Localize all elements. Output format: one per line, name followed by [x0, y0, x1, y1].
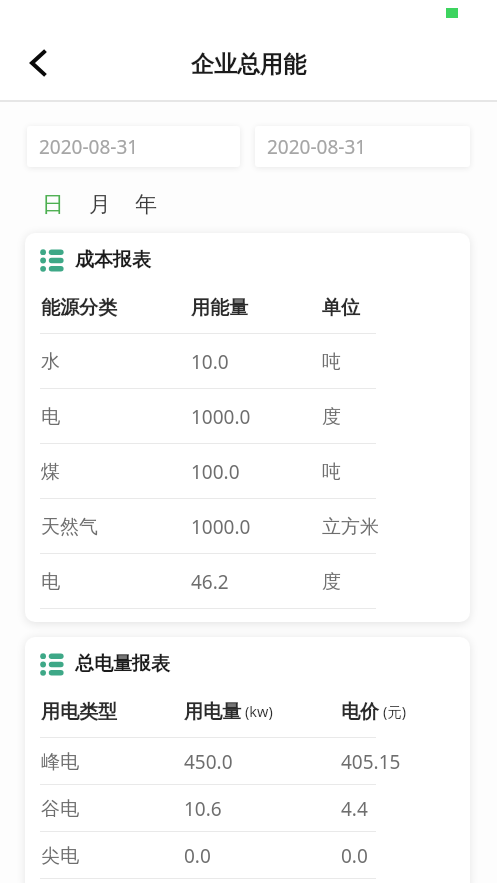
- staticText: 吨: [322, 350, 341, 374]
- staticText: 1000.0: [191, 514, 251, 540]
- staticText: 总电量报表: [75, 652, 170, 676]
- staticText: 吨: [322, 460, 341, 484]
- staticText: 1000.0: [191, 404, 251, 430]
- staticText: 立方米: [322, 515, 379, 539]
- staticText: 用电量: [184, 700, 241, 724]
- staticText: 电价: [341, 700, 379, 724]
- button[interactable]: Back: [10, 35, 66, 91]
- staticText: 天然气: [41, 515, 98, 539]
- staticText: 10.0: [191, 349, 229, 375]
- staticText: 峰电: [41, 750, 79, 774]
- staticText: 电: [41, 570, 60, 594]
- staticText: 4.4: [341, 796, 368, 822]
- staticText: (kw): [245, 702, 273, 722]
- staticText: 月: [89, 191, 111, 219]
- staticText: 10.6: [184, 796, 222, 822]
- button[interactable]: 日: [34, 185, 72, 225]
- staticText: 能源分类: [41, 296, 117, 320]
- staticText: 0.0: [341, 843, 368, 869]
- staticText: 0.0: [184, 843, 211, 869]
- staticText: 度: [322, 405, 341, 429]
- staticText: 日: [42, 191, 64, 219]
- button[interactable]: 2020-08-31: [27, 126, 240, 167]
- staticText: 企业总用能: [191, 50, 306, 79]
- staticText: 用电类型: [41, 700, 117, 724]
- staticText: 电: [41, 405, 60, 429]
- staticText: 405.15: [341, 749, 401, 775]
- staticText: (元): [383, 702, 407, 722]
- staticText: 450.0: [184, 749, 233, 775]
- staticText: 水: [41, 350, 60, 374]
- staticText: 单位: [322, 296, 360, 320]
- staticText: 煤: [41, 460, 60, 484]
- staticText: 用能量: [191, 296, 248, 320]
- staticText: 成本报表: [75, 248, 151, 272]
- staticText: 46.2: [191, 569, 229, 595]
- button[interactable]: 2020-08-31: [255, 126, 470, 167]
- staticText: 100.0: [191, 459, 240, 485]
- staticText: 年: [135, 191, 157, 219]
- staticText: 谷电: [41, 797, 79, 821]
- button[interactable]: 年: [127, 185, 165, 225]
- staticText: 尖电: [41, 844, 79, 868]
- staticText: 度: [322, 570, 341, 594]
- staticText: 2020-08-31: [39, 134, 139, 160]
- staticText: 2020-08-31: [267, 134, 367, 160]
- button[interactable]: 月: [81, 185, 119, 225]
